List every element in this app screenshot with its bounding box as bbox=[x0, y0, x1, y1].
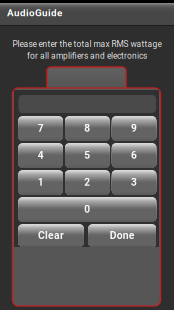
button[interactable]: 8 bbox=[65, 116, 109, 140]
button[interactable]: 3 bbox=[112, 170, 156, 194]
staticText: Clear bbox=[38, 229, 64, 242]
staticText: 7 bbox=[38, 122, 44, 134]
staticText: 0 bbox=[84, 203, 90, 215]
staticText: 8 bbox=[84, 122, 90, 134]
staticText: 5 bbox=[84, 149, 90, 161]
button[interactable]: 7 bbox=[18, 116, 63, 140]
button[interactable]: Wattage entry field bbox=[47, 67, 126, 90]
button[interactable]: 6 bbox=[112, 143, 156, 167]
staticText: 2 bbox=[84, 176, 90, 188]
button[interactable]: Clear bbox=[18, 224, 83, 247]
staticText: 4 bbox=[38, 149, 44, 161]
staticText: Done bbox=[110, 229, 135, 242]
staticText: AudioGuide bbox=[7, 7, 62, 19]
staticText: 6 bbox=[131, 149, 137, 161]
staticText: Please enter the total max RMS wattage bbox=[12, 39, 161, 49]
button[interactable]: 1 bbox=[18, 170, 63, 194]
button[interactable]: 9 bbox=[112, 116, 156, 140]
staticText: for all amplifiers and electronics bbox=[27, 51, 147, 61]
button[interactable]: 5 bbox=[65, 143, 109, 167]
button[interactable]: 0 bbox=[18, 197, 156, 221]
staticText: 9 bbox=[131, 122, 137, 134]
button[interactable]: 4 bbox=[18, 143, 63, 167]
staticText: 3 bbox=[131, 176, 137, 188]
button[interactable]: Done bbox=[88, 224, 156, 247]
staticText: 1 bbox=[38, 176, 44, 188]
button[interactable]: 2 bbox=[65, 170, 109, 194]
